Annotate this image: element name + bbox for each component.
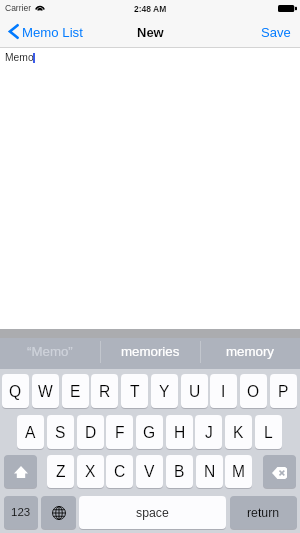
staticText: C	[114, 463, 126, 480]
button[interactable]: N	[196, 455, 223, 488]
button[interactable]: R	[91, 374, 118, 408]
staticText: B	[174, 463, 185, 480]
staticText: V	[144, 463, 155, 480]
button[interactable]: Z	[47, 455, 74, 488]
staticText: space	[136, 506, 169, 520]
staticText: U	[189, 383, 201, 400]
button[interactable]: memories	[100, 329, 200, 369]
staticText: K	[233, 424, 244, 441]
button[interactable]: Memo List	[0, 17, 89, 47]
button[interactable]: I	[210, 374, 237, 408]
staticText: New	[137, 25, 164, 40]
staticText: A	[25, 424, 36, 441]
button[interactable]: Next keyboard	[41, 496, 76, 529]
staticText: D	[85, 424, 97, 441]
button[interactable]: A	[17, 415, 44, 449]
button[interactable]: B	[166, 455, 193, 488]
button[interactable]: 123	[4, 496, 38, 529]
button[interactable]: U	[181, 374, 208, 408]
button[interactable]: P	[270, 374, 297, 408]
button[interactable]: Y	[151, 374, 178, 408]
button[interactable]: L	[255, 415, 282, 449]
button[interactable]: memory	[200, 329, 300, 369]
staticText: “Memo”	[27, 344, 73, 359]
staticText: T	[130, 383, 140, 400]
button[interactable]: V	[136, 455, 163, 488]
button[interactable]: S	[47, 415, 74, 449]
button[interactable]: Backspace	[263, 455, 296, 488]
staticText: G	[143, 424, 156, 441]
button[interactable]: F	[106, 415, 133, 449]
staticText: Y	[159, 383, 170, 400]
staticText: return	[247, 506, 280, 520]
staticText: O	[247, 383, 260, 400]
button[interactable]: W	[32, 374, 59, 408]
button[interactable]: Shift	[4, 455, 37, 488]
staticText: M	[232, 463, 245, 480]
button[interactable]: E	[62, 374, 89, 408]
staticText: P	[278, 383, 289, 400]
button[interactable]: G	[136, 415, 163, 449]
button[interactable]: T	[121, 374, 148, 408]
button[interactable]: Q	[2, 374, 29, 408]
button[interactable]: “Memo”	[0, 329, 100, 369]
staticText: H	[174, 424, 186, 441]
staticText: E	[70, 383, 81, 400]
staticText: N	[204, 463, 216, 480]
staticText: memories	[121, 344, 180, 359]
staticText: Q	[9, 383, 22, 400]
staticText: Z	[56, 463, 66, 480]
staticText: 2:48 AM	[134, 4, 167, 13]
button[interactable]: J	[195, 415, 222, 449]
staticText: S	[55, 424, 66, 441]
staticText: Memo	[5, 52, 34, 64]
button[interactable]: X	[77, 455, 104, 488]
staticText: W	[38, 383, 53, 400]
button[interactable]: C	[106, 455, 133, 488]
button[interactable]: H	[166, 415, 193, 449]
staticText: X	[85, 463, 96, 480]
staticText: F	[115, 424, 125, 441]
staticText: J	[205, 424, 213, 441]
button[interactable]: K	[225, 415, 252, 449]
button[interactable]: Save	[255, 17, 300, 47]
staticText: Save	[261, 25, 291, 40]
staticText: Carrier	[5, 3, 31, 12]
button[interactable]: O	[240, 374, 267, 408]
staticText: R	[99, 383, 111, 400]
button[interactable]: space	[79, 496, 226, 529]
staticText: 123	[11, 506, 31, 519]
button[interactable]: D	[77, 415, 104, 449]
staticText: L	[264, 424, 273, 441]
staticText: Memo List	[22, 25, 83, 40]
staticText: memory	[226, 344, 275, 359]
button[interactable]: M	[225, 455, 252, 488]
button[interactable]: return	[230, 496, 297, 529]
staticText: I	[221, 383, 226, 400]
